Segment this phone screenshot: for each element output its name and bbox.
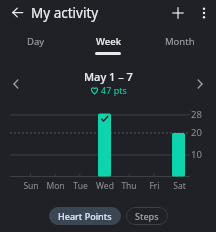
staticText: Tue xyxy=(73,180,88,192)
staticText: Thu xyxy=(121,180,137,192)
staticText: Sun xyxy=(23,180,39,192)
staticText: Month xyxy=(165,35,195,48)
staticText: 47 pts xyxy=(101,84,127,96)
staticText: 28 xyxy=(191,108,202,121)
staticText: Day xyxy=(27,35,45,48)
staticText: Fri xyxy=(149,180,160,192)
staticText: May 1 – 7 xyxy=(84,69,133,84)
staticText: Heart Points xyxy=(58,210,112,222)
staticText: Mon xyxy=(46,180,65,192)
button[interactable]: Steps xyxy=(126,207,168,225)
button[interactable]: Day xyxy=(0,31,72,57)
button[interactable]: Month xyxy=(144,31,216,57)
button[interactable]: Week xyxy=(72,31,144,57)
button[interactable]: Add xyxy=(165,0,190,25)
staticText: Wed xyxy=(96,180,114,192)
button[interactable]: Previous week xyxy=(6,74,26,94)
button[interactable]: Next week xyxy=(190,74,210,94)
button[interactable]: Heart Points xyxy=(49,207,121,225)
staticText: Steps xyxy=(135,210,159,222)
button[interactable]: Back xyxy=(5,0,30,25)
staticText: My activity xyxy=(31,4,99,22)
staticText: Sat xyxy=(173,180,186,192)
staticText: 20 xyxy=(191,126,202,139)
staticText: Week xyxy=(96,35,121,48)
button[interactable]: More options xyxy=(191,0,216,25)
staticText: 10 xyxy=(191,148,202,161)
